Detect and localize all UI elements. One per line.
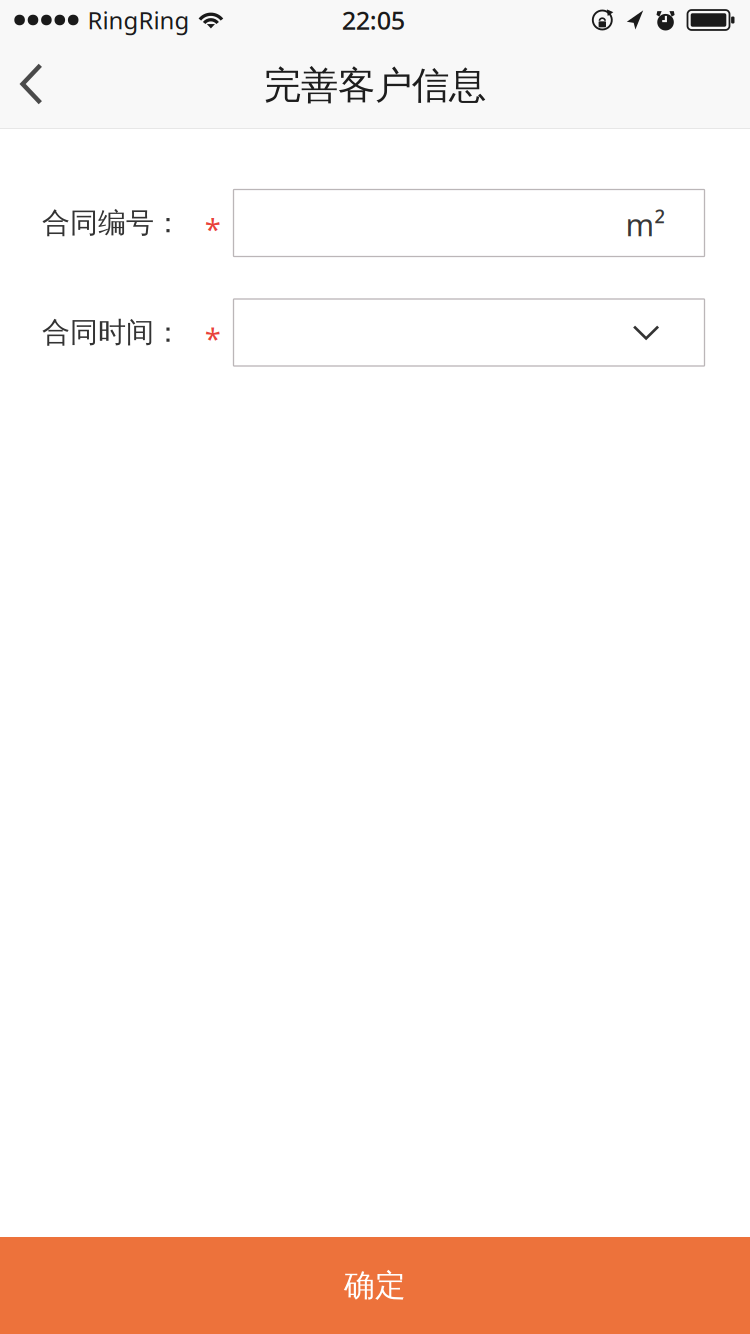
staticText: RingRing [87, 4, 189, 36]
button[interactable]: 合同时间 [233, 299, 704, 366]
staticText: * [205, 209, 221, 248]
button[interactable]: Back [0, 40, 71, 128]
staticText: 合同编号： [42, 206, 182, 240]
button[interactable]: 合同编号 [233, 189, 704, 256]
staticText: m² [625, 204, 665, 245]
staticText: 确定 [344, 1267, 406, 1304]
staticText: 22:05 [342, 3, 405, 37]
staticText: 合同时间： [42, 315, 182, 350]
staticText: * [205, 318, 221, 357]
staticText: 完善客户信息 [264, 63, 486, 108]
button[interactable]: 确定 [0, 1237, 750, 1334]
